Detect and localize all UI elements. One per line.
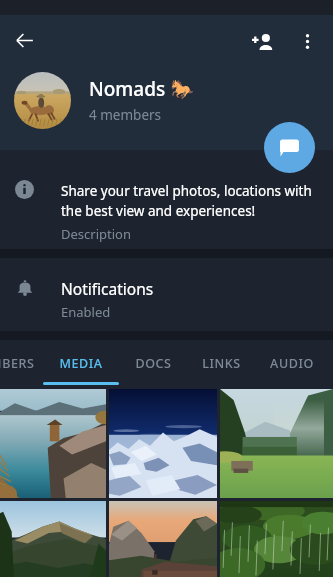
button[interactable]: Add member xyxy=(246,25,279,58)
staticText: LINKS xyxy=(202,355,241,372)
button[interactable]: More options xyxy=(291,25,323,57)
staticText: Description xyxy=(61,225,131,243)
staticText: Notifications xyxy=(61,278,154,299)
staticText: Nomads 🐎 xyxy=(89,76,194,102)
button[interactable]: LINKS xyxy=(181,342,261,384)
button[interactable]: MEDIA xyxy=(41,342,121,384)
button[interactable]: Send message xyxy=(264,122,315,173)
staticText: MEMBERS xyxy=(0,355,35,372)
staticText: DOCS xyxy=(135,355,172,372)
button[interactable]: AUDIO xyxy=(252,342,332,384)
staticText: 4 members xyxy=(89,106,162,124)
staticText: MEDIA xyxy=(59,355,103,372)
staticText: AUDIO xyxy=(270,355,314,372)
button[interactable]: MEMBERS xyxy=(0,342,62,384)
button[interactable]: DOCS xyxy=(113,342,193,384)
button[interactable]: Back xyxy=(8,24,40,56)
staticText: Share your travel photos, locations with… xyxy=(61,182,312,220)
staticText: Enabled xyxy=(61,303,111,321)
button[interactable]: Notifications xyxy=(0,258,333,331)
